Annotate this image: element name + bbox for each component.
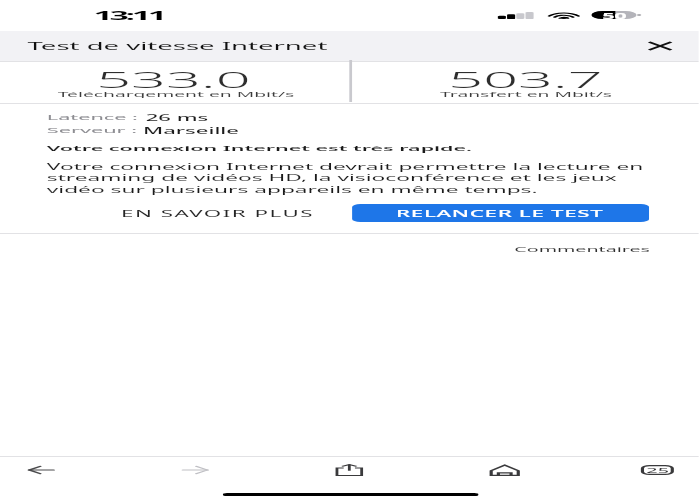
staticText: Commentaires: [514, 244, 652, 254]
staticText: Votre connexion Internet devrait permett…: [47, 161, 657, 196]
staticText: Votre connexion Internet est très rapide…: [47, 143, 473, 154]
button[interactable]: RELANCER LE TEST: [352, 204, 649, 222]
button[interactable]: Fermer: [638, 38, 682, 54]
staticText: Transfert en Mbit/s: [440, 90, 613, 98]
staticText: 50: [602, 11, 627, 19]
staticText: 533.0: [96, 64, 253, 94]
button[interactable]: Partager: [330, 463, 369, 477]
staticText: Serveur :: [47, 125, 143, 136]
staticText: Téléchargement en Mbit/s: [58, 90, 294, 98]
staticText: Latence :: [47, 112, 146, 123]
staticText: Marseille: [143, 125, 239, 136]
staticText: RELANCER LE TEST: [396, 208, 605, 219]
staticText: 26 ms: [146, 112, 209, 123]
button[interactable]: Suivant: [176, 463, 214, 477]
button[interactable]: Retour: [22, 463, 60, 477]
staticText: Test de vitesse Internet: [27, 39, 327, 53]
staticText: 13:11: [93, 7, 165, 24]
staticText: EN SAVOIR PLUS: [121, 208, 316, 219]
staticText: 503.7: [448, 64, 605, 94]
staticText: 25: [646, 465, 671, 475]
button[interactable]: EN SAVOIR PLUS: [121, 202, 316, 224]
button[interactable]: Commentaires: [514, 242, 652, 256]
button[interactable]: Favoris: [484, 463, 523, 477]
button[interactable]: Onglets : 25: [638, 463, 677, 477]
